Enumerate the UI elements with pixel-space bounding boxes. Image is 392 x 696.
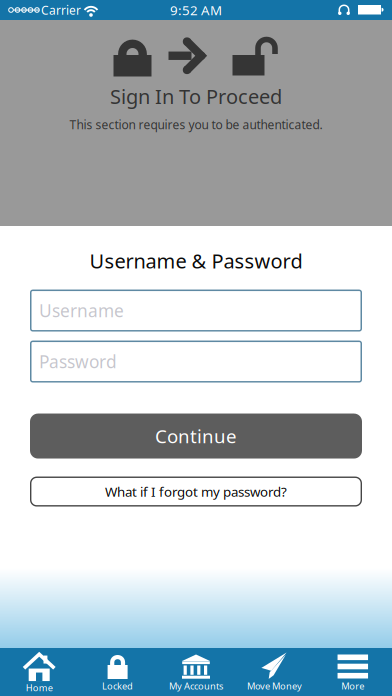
button[interactable]: More xyxy=(314,648,392,696)
staticText: Username & Password xyxy=(89,247,302,274)
staticText: What if I forgot my password? xyxy=(105,483,287,500)
button[interactable]: Password xyxy=(30,341,362,383)
button[interactable]: What if I forgot my password? xyxy=(30,477,362,507)
staticText: 9:52 AM xyxy=(170,1,222,19)
staticText: Username xyxy=(39,299,124,322)
staticText: Sign In To Proceed xyxy=(110,83,282,110)
button[interactable]: Continue xyxy=(30,414,362,459)
button[interactable]: Username xyxy=(30,290,362,332)
staticText: Locked xyxy=(102,680,133,692)
staticText: Password xyxy=(39,350,117,373)
staticText: More xyxy=(341,680,364,692)
staticText: Move Money xyxy=(247,680,302,692)
button[interactable]: My Accounts xyxy=(157,648,235,696)
button[interactable]: Home xyxy=(0,648,78,696)
staticText: This section requires you to be authenti… xyxy=(69,117,322,132)
staticText: Continue xyxy=(155,424,237,448)
staticText: My Accounts xyxy=(169,680,223,692)
button[interactable]: Locked xyxy=(78,648,157,696)
staticText: Carrier xyxy=(41,2,81,18)
staticText: Home xyxy=(26,682,53,694)
button[interactable]: Move Money xyxy=(235,648,314,696)
